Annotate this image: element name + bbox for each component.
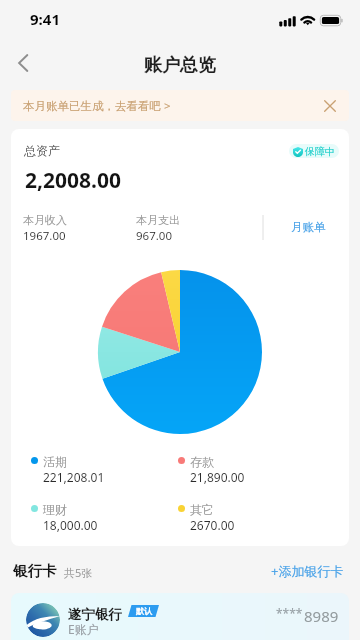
staticText: 其它 [190,502,214,517]
staticText: 默认 [136,606,152,616]
button[interactable]: 遂宁银行 [11,593,349,640]
staticText: 本月账单已生成，去看看吧 > [23,98,171,114]
staticText: 8989 [304,606,339,626]
staticText: 活期 [43,454,67,469]
staticText: 月账单 [291,220,326,234]
button[interactable]: 保障中 [289,144,339,158]
staticText: 18,000.00 [43,517,98,533]
button[interactable]: 月账单 [272,211,345,243]
staticText: **** [276,605,303,621]
button[interactable]: Close banner [320,96,340,116]
staticText: 银行卡 [13,562,57,580]
staticText: +添加银行卡 [271,562,344,580]
staticText: 遂宁银行 [68,606,122,623]
staticText: 967.00 [136,228,172,244]
staticText: 2670.00 [190,517,235,533]
staticText: 存款 [190,454,214,469]
staticText: 9:41 [30,9,60,29]
staticText: 本月支出 [136,213,180,227]
button[interactable]: Back [8,48,38,78]
staticText: E账户 [68,621,99,637]
staticText: 账户总览 [144,54,216,77]
button[interactable]: +添加银行卡 [266,558,349,584]
staticText: 共5张 [64,565,93,580]
staticText: 221,208.01 [43,469,105,485]
button[interactable]: 本月账单已生成，去看看吧 > [11,90,349,121]
staticText: 保障中 [305,145,335,158]
staticText: 总资产 [24,143,60,158]
staticText: 21,890.00 [190,469,245,485]
staticText: 1967.00 [23,228,66,244]
staticText: 理财 [43,502,67,517]
staticText: 本月收入 [23,213,67,227]
staticText: 2,2008.00 [25,166,121,195]
